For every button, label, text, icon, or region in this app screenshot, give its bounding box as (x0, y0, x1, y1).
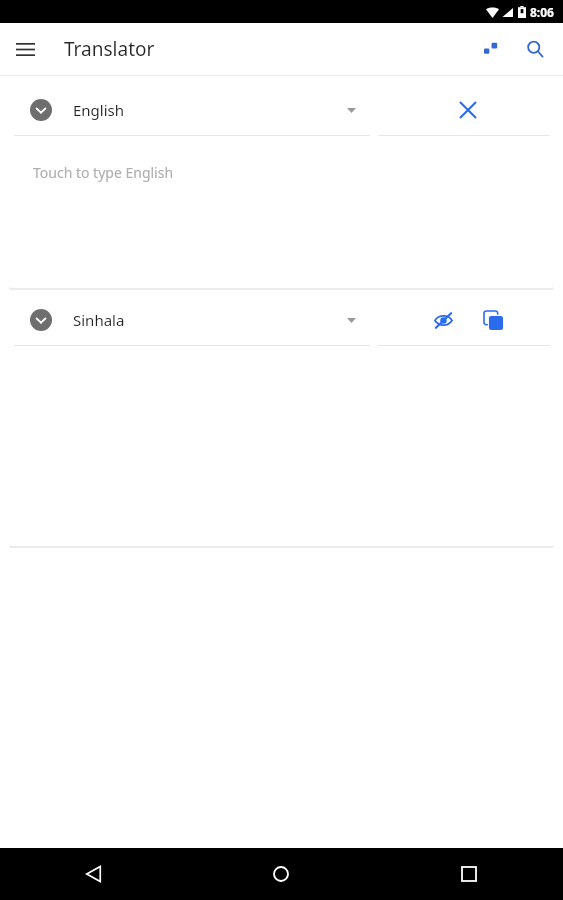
button[interactable]: Sinhala (9, 295, 382, 345)
staticText: Sinhala (73, 310, 125, 330)
button[interactable]: Back (0, 848, 187, 900)
button[interactable]: Copy translation (471, 298, 515, 342)
button[interactable]: Clear text (446, 88, 490, 132)
button[interactable]: Search (513, 27, 557, 71)
button[interactable]: Hide translation (421, 298, 465, 342)
staticText: 8:06 (530, 4, 554, 20)
button[interactable]: Recent apps (375, 848, 563, 900)
staticText: Translator (64, 36, 155, 62)
button[interactable]: English (9, 85, 382, 135)
staticText: Touch to type English (33, 163, 174, 182)
button[interactable]: Open navigation menu (5, 29, 45, 69)
button[interactable]: Home (187, 848, 375, 900)
staticText: English (73, 100, 125, 120)
button[interactable]: Conversation mode (469, 27, 513, 71)
button[interactable]: Touch to type English (9, 136, 554, 288)
